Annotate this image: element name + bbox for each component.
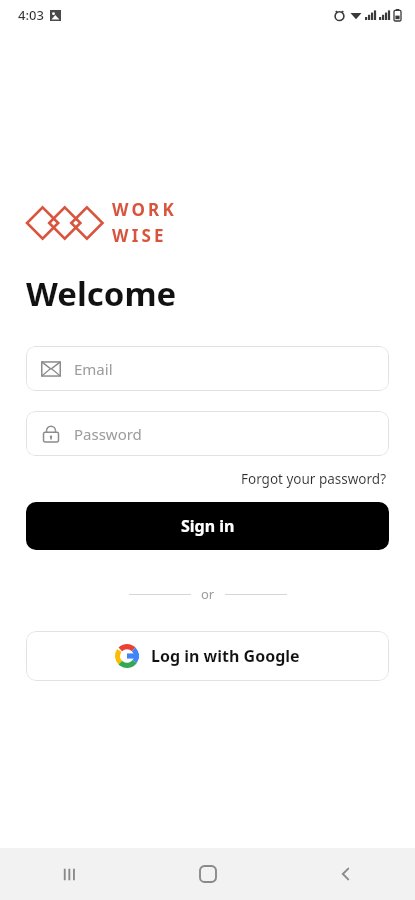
button[interactable]: Log in with Google bbox=[26, 631, 389, 681]
staticText: or bbox=[201, 585, 215, 603]
staticText: WISE bbox=[112, 224, 167, 247]
button[interactable]: Back bbox=[277, 848, 415, 900]
staticText: Password bbox=[74, 424, 142, 444]
staticText: Log in with Google bbox=[151, 645, 300, 667]
button[interactable]: Email bbox=[26, 346, 389, 391]
button[interactable]: Recent apps bbox=[0, 848, 139, 900]
button[interactable]: Sign in bbox=[26, 502, 389, 550]
button[interactable]: Password bbox=[26, 411, 389, 456]
button[interactable]: Forgot your password? bbox=[239, 468, 389, 490]
button[interactable]: Home bbox=[139, 848, 277, 900]
staticText: Forgot your password? bbox=[241, 470, 387, 488]
staticText: Welcome bbox=[26, 271, 177, 316]
staticText: Email bbox=[74, 359, 113, 379]
staticText: 4:03 bbox=[18, 6, 44, 24]
staticText: Sign in bbox=[181, 515, 235, 537]
staticText: WORK bbox=[112, 198, 177, 221]
